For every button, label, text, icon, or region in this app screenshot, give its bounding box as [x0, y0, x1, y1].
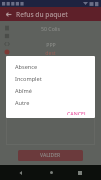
staticText: PPP	[46, 41, 56, 48]
staticText: dest	[45, 49, 56, 56]
staticText: 50 Colis	[41, 25, 60, 32]
staticText: Absence	[15, 63, 38, 71]
button[interactable]: Incomplet	[6, 73, 95, 85]
button[interactable]: Back	[13, 165, 29, 180]
button[interactable]: Abîmé	[6, 85, 95, 97]
button[interactable]: Recents	[72, 165, 88, 180]
button[interactable]: Back	[0, 7, 16, 21]
staticText: Autre	[15, 99, 30, 107]
button[interactable]: Autre	[6, 97, 95, 109]
staticText: Refus du paquet	[16, 10, 68, 19]
staticText: VALIDER	[40, 152, 61, 159]
button[interactable]: VALIDER	[18, 150, 83, 161]
button[interactable]: Home	[43, 165, 59, 180]
staticText: CANCEL	[67, 110, 87, 115]
button[interactable]: CANCEL	[65, 109, 89, 116]
button[interactable]: Absence	[6, 61, 95, 73]
staticText: Abîmé	[15, 87, 32, 95]
staticText: Incomplet	[15, 75, 42, 83]
